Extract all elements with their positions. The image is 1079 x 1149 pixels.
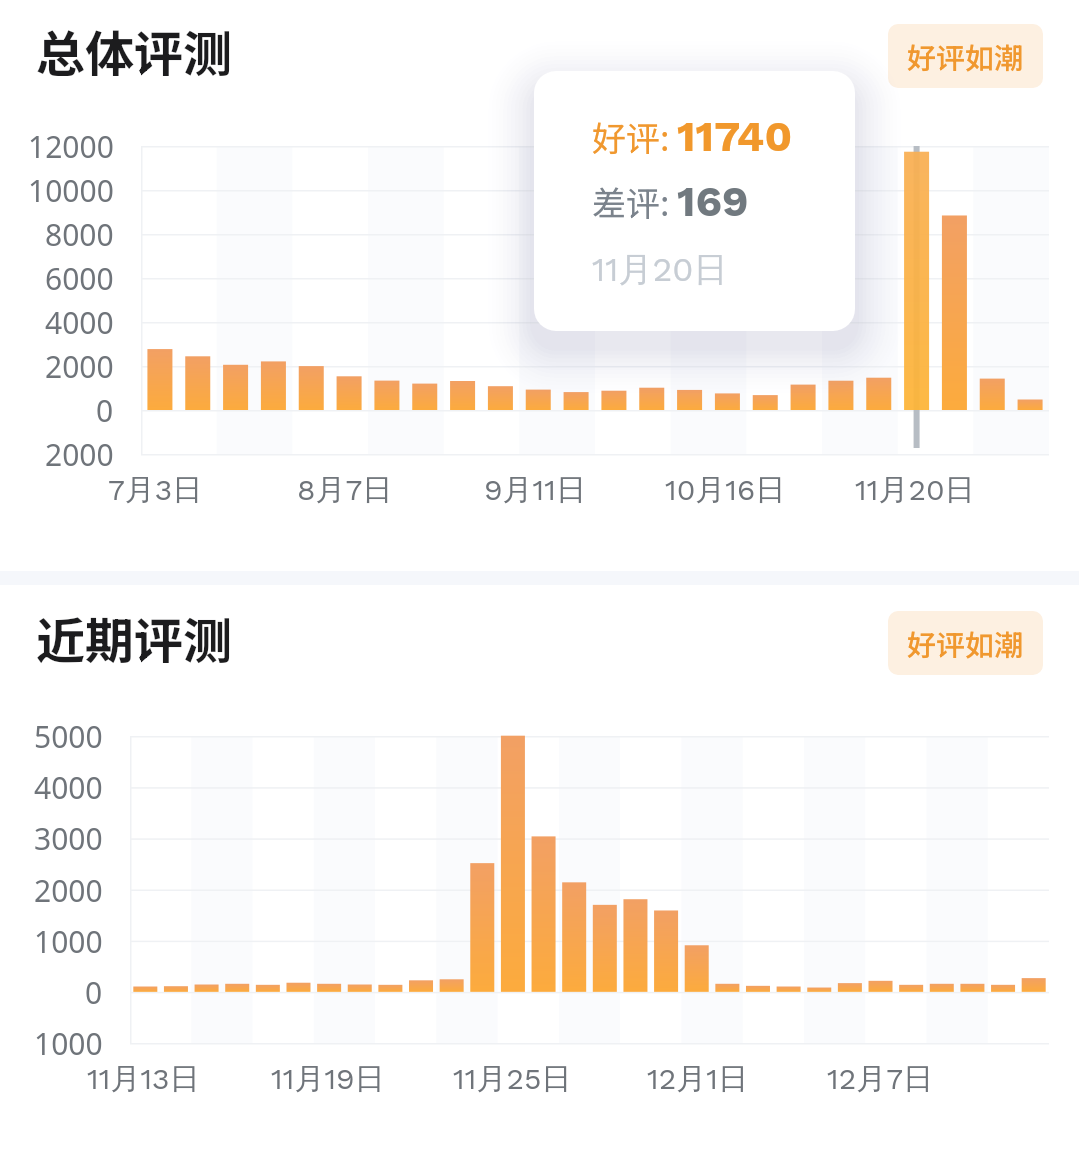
staticText: 差评: 169 [592,176,749,226]
button[interactable]: 好评如潮 [888,611,1043,675]
staticText: 11月20日 [855,471,975,509]
staticText: 5000 [34,716,103,757]
staticText: 1000 [34,921,103,962]
staticText: 11月13日 [87,1060,200,1098]
staticText: 6000 [45,258,114,299]
staticText: 7月3日 [108,471,203,509]
staticText: 11月19日 [271,1060,385,1098]
button[interactable]: 好评如潮 [888,24,1043,88]
staticText: 10000 [28,170,114,211]
staticText: 好评如潮 [907,622,1024,664]
staticText: 2000 [45,434,114,475]
staticText: 总体评测 [36,15,233,86]
staticText: 2000 [34,870,103,911]
staticText: 8000 [45,214,114,255]
staticText: 0 [96,390,114,431]
staticText: 11月25日 [453,1060,572,1098]
staticText: 9月11日 [484,471,586,509]
staticText: 好评: 11740 [592,111,793,161]
staticText: 好评如潮 [907,35,1024,77]
staticText: 4000 [45,302,114,343]
staticText: 11月20日 [592,248,728,291]
staticText: 12月7日 [827,1060,934,1098]
staticText: 4000 [34,767,103,808]
staticText: 12000 [28,126,114,167]
staticText: 0 [85,972,103,1013]
staticText: 3000 [34,818,103,859]
button[interactable]: 11月20日 好评 11740 差评 169 [534,71,855,331]
staticText: 2000 [45,346,114,387]
staticText: 12月1日 [647,1060,748,1098]
staticText: 10月16日 [665,471,786,509]
staticText: 1000 [34,1023,103,1064]
staticText: 8月7日 [297,471,393,509]
staticText: 近期评测 [36,602,233,673]
